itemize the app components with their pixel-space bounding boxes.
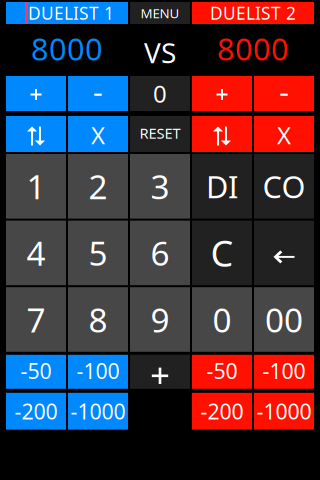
staticText: 5 xyxy=(88,231,107,275)
button[interactable]: -100 xyxy=(254,355,314,389)
staticText: -200 xyxy=(200,397,243,425)
button[interactable]: X xyxy=(68,116,128,152)
button[interactable]: 4 xyxy=(6,221,66,285)
staticText: -50 xyxy=(206,357,237,385)
button[interactable]: 3 xyxy=(130,154,190,219)
button[interactable]: -1000 xyxy=(254,393,314,430)
staticText: 1 xyxy=(26,164,45,208)
button[interactable]: Swap life points xyxy=(6,116,66,152)
button[interactable]: RESET xyxy=(130,116,190,152)
staticText: 9 xyxy=(150,297,169,342)
staticText: 8000 xyxy=(217,28,289,69)
button[interactable]: CO xyxy=(254,154,314,219)
button[interactable]: C xyxy=(192,221,252,285)
button[interactable]: 0 xyxy=(130,76,190,111)
staticText: -200 xyxy=(14,397,57,425)
staticText: DI xyxy=(206,166,238,207)
button[interactable]: Backspace xyxy=(254,221,314,285)
staticText: CO xyxy=(262,166,305,207)
staticText: RESET xyxy=(139,123,180,143)
button[interactable]: 0 xyxy=(192,287,252,352)
staticText: VS xyxy=(144,34,176,71)
staticText: -100 xyxy=(262,357,305,385)
staticText: 00 xyxy=(265,297,303,342)
staticText: MENU xyxy=(140,4,179,22)
staticText: 4 xyxy=(26,231,45,275)
staticText: 3 xyxy=(150,164,169,208)
button[interactable]: DUELIST 1 xyxy=(6,2,128,24)
button[interactable]: DI xyxy=(192,154,252,219)
staticText: C xyxy=(210,229,233,277)
staticText: 8000 xyxy=(31,28,103,69)
staticText: 0 xyxy=(153,78,167,109)
staticText: -1000 xyxy=(256,397,311,425)
button[interactable]: 1 xyxy=(6,154,66,219)
button[interactable]: Subtract from Duelist 1 xyxy=(68,76,128,111)
button[interactable]: 6 xyxy=(130,221,190,285)
button[interactable]: 7 xyxy=(6,287,66,352)
button[interactable]: Add to Duelist 1 xyxy=(6,76,66,111)
button[interactable]: 9 xyxy=(130,287,190,352)
button[interactable]: 8 xyxy=(68,287,128,352)
button[interactable]: Subtract from Duelist 2 xyxy=(254,76,314,111)
button[interactable]: DUELIST 2 xyxy=(192,2,314,24)
button[interactable]: 5 xyxy=(68,221,128,285)
staticText: 6 xyxy=(150,231,169,275)
button[interactable]: MENU xyxy=(130,2,190,24)
staticText: DUELIST 2 xyxy=(210,1,296,24)
button[interactable]: -200 xyxy=(6,393,66,430)
button[interactable]: -200 xyxy=(192,393,252,430)
staticText: 0 xyxy=(212,297,231,342)
button[interactable]: -1000 xyxy=(68,393,128,430)
staticText: -100 xyxy=(76,357,119,385)
button[interactable]: 2 xyxy=(68,154,128,219)
button[interactable]: Add to Duelist 2 xyxy=(192,76,252,111)
staticText: 7 xyxy=(26,297,45,342)
button[interactable]: -100 xyxy=(68,355,128,389)
staticText: 8 xyxy=(88,297,107,342)
button[interactable]: -50 xyxy=(6,355,66,389)
staticText: X xyxy=(91,119,105,151)
button[interactable]: -50 xyxy=(192,355,252,389)
button[interactable]: Apply xyxy=(130,355,190,389)
staticText: -1000 xyxy=(70,397,125,425)
staticText: DUELIST 1 xyxy=(28,1,114,24)
button[interactable]: Swap life points xyxy=(192,116,252,152)
staticText: X xyxy=(277,119,291,151)
button[interactable]: X xyxy=(254,116,314,152)
staticText: 2 xyxy=(88,164,107,208)
staticText: -50 xyxy=(20,357,51,385)
button[interactable]: 00 xyxy=(254,287,314,352)
